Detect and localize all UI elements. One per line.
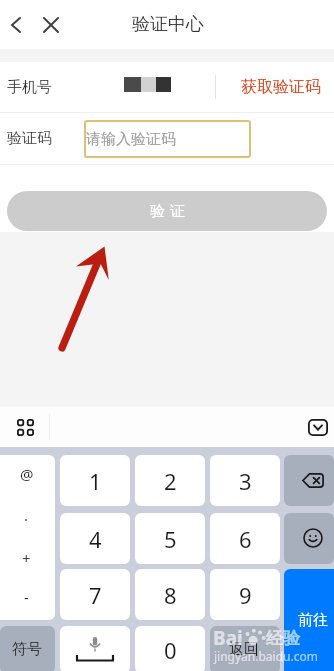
- staticText: 验: [150, 202, 165, 221]
- button[interactable]: 验: [7, 191, 327, 231]
- button[interactable]: Emoji: [284, 513, 334, 564]
- button[interactable]: 2: [135, 455, 205, 506]
- staticText: 获取验证码: [241, 77, 321, 97]
- button[interactable]: 5: [135, 513, 205, 564]
- staticText: 8: [164, 580, 177, 610]
- staticText: 3: [239, 466, 252, 496]
- button[interactable]: 3: [210, 455, 280, 506]
- button[interactable]: 6: [210, 513, 280, 564]
- button[interactable]: 7: [60, 569, 130, 620]
- staticText: 符号: [12, 640, 42, 659]
- staticText: Bai: [213, 625, 243, 651]
- button[interactable]: 9: [210, 569, 280, 620]
- staticText: @: [20, 464, 34, 484]
- button[interactable]: @: [0, 455, 55, 494]
- button[interactable]: 1: [60, 455, 130, 506]
- button[interactable]: Back: [1, 8, 31, 42]
- button[interactable]: -: [0, 577, 55, 617]
- staticText: 4: [89, 524, 102, 554]
- button[interactable]: Backspace: [284, 455, 334, 506]
- staticText: 前往: [298, 611, 328, 630]
- button[interactable]: 0: [135, 626, 205, 671]
- staticText: 2: [164, 466, 177, 496]
- button[interactable]: Voice input: [60, 626, 130, 671]
- staticText: 请输入验证码: [86, 130, 176, 149]
- staticText: 0: [164, 635, 177, 665]
- button[interactable]: 8: [135, 569, 205, 620]
- staticText: jingyan.baidu.com: [214, 648, 318, 664]
- button[interactable]: Keyboard panel: [11, 413, 39, 441]
- staticText: 5: [164, 524, 177, 554]
- button[interactable]: ·: [0, 499, 55, 539]
- button[interactable]: 请输入验证码: [84, 120, 251, 158]
- staticText: 验证码: [7, 129, 52, 148]
- button[interactable]: 符号: [0, 626, 55, 671]
- staticText: 1: [89, 466, 102, 496]
- staticText: 6: [239, 524, 252, 554]
- staticText: ·: [24, 509, 29, 529]
- button[interactable]: Close: [36, 8, 66, 42]
- button[interactable]: 前往: [284, 569, 334, 671]
- staticText: 经验: [266, 628, 300, 649]
- staticText: 9: [239, 580, 252, 610]
- button[interactable]: 获取验证码: [241, 77, 321, 97]
- staticText: +: [22, 548, 31, 568]
- staticText: 7: [89, 580, 102, 610]
- staticText: 证: [170, 202, 185, 221]
- staticText: 返回: [229, 640, 259, 659]
- button[interactable]: 4: [60, 513, 130, 564]
- staticText: 手机号: [7, 78, 52, 97]
- button[interactable]: +: [0, 538, 55, 578]
- button[interactable]: Hide keyboard: [303, 412, 333, 442]
- staticText: -: [24, 587, 29, 607]
- staticText: 验证中心: [132, 13, 204, 36]
- button[interactable]: 返回: [210, 626, 280, 671]
